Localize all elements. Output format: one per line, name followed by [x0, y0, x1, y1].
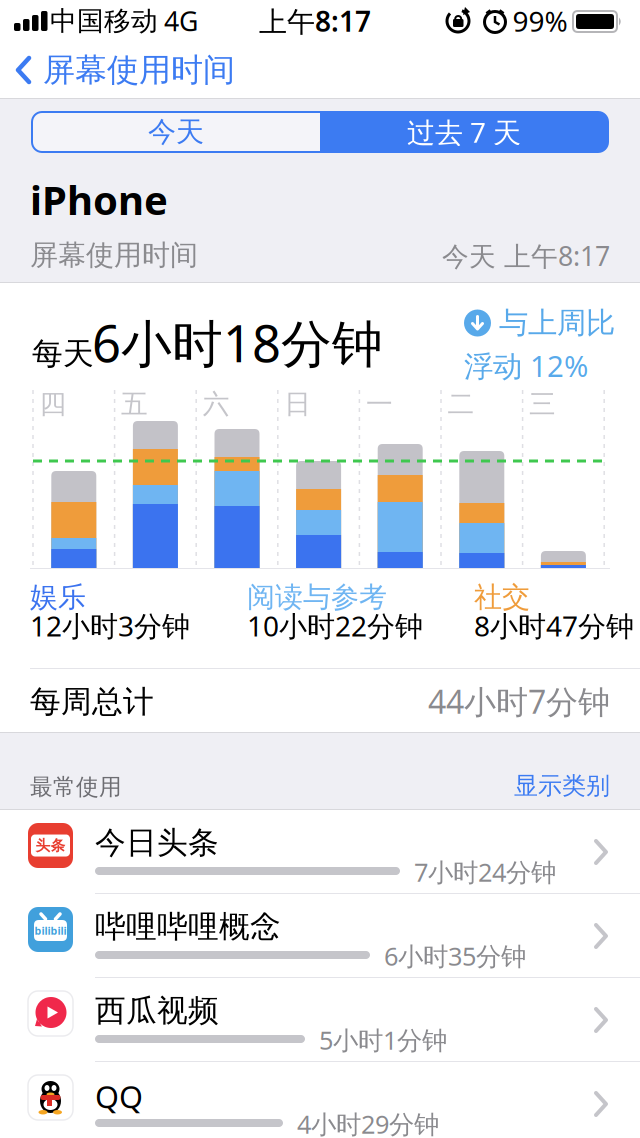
staticText: 今日头条 — [95, 824, 219, 862]
staticText: 过去 7 天 — [407, 113, 521, 151]
staticText: 5小时1分钟 — [319, 1023, 447, 1057]
button[interactable]: 过去 7 天 — [320, 112, 608, 152]
staticText: 六 — [203, 388, 230, 420]
staticText: 4小时29分钟 — [297, 1107, 439, 1138]
staticText: 10小时22分钟 — [247, 607, 423, 644]
staticText: 四 — [39, 388, 66, 420]
staticText: 12小时3分钟 — [30, 607, 190, 644]
staticText: 日 — [284, 388, 311, 420]
staticText: 6小时18分钟 — [92, 309, 383, 376]
staticText: 头条 — [35, 836, 65, 854]
staticText: QQ — [95, 1076, 143, 1117]
staticText: 屏幕使用时间 — [43, 50, 235, 90]
button[interactable]: 西瓜视频 — [0, 978, 640, 1062]
staticText: 7小时24分钟 — [414, 855, 556, 889]
staticText: iPhone — [30, 173, 168, 226]
staticText: 屏幕使用时间 — [30, 238, 198, 272]
staticText: 4G — [164, 3, 198, 39]
button[interactable]: QQ — [0, 1062, 640, 1138]
staticText: 社交 — [474, 580, 530, 614]
staticText: 6小时35分钟 — [384, 939, 526, 973]
staticText: 娱乐 — [30, 580, 86, 614]
button[interactable]: 屏幕使用时间 — [0, 42, 235, 98]
staticText: 三 — [529, 388, 556, 420]
staticText: 与上周比 — [499, 305, 615, 341]
staticText: 今天 — [148, 115, 204, 149]
button[interactable]: 头条 — [0, 810, 640, 894]
staticText: 中国移动 — [50, 5, 158, 37]
button[interactable]: bilibili — [0, 894, 640, 978]
staticText: 显示类别 — [514, 771, 610, 800]
staticText: 西瓜视频 — [95, 992, 219, 1030]
staticText: 上午8:17 — [259, 2, 371, 40]
staticText: 每天 — [32, 335, 94, 373]
staticText: 8小时47分钟 — [474, 607, 634, 644]
button[interactable]: 显示类别 — [514, 771, 640, 800]
staticText: 99% — [512, 2, 567, 40]
staticText: 浮动 12% — [464, 346, 588, 385]
staticText: 最常使用 — [30, 773, 122, 801]
staticText: 五 — [121, 388, 148, 420]
staticText: 今天 上午8:17 — [442, 238, 610, 273]
button[interactable]: 今天 — [32, 112, 320, 152]
staticText: 一 — [366, 388, 393, 420]
staticText: 阅读与参考 — [247, 580, 387, 614]
staticText: 二 — [447, 388, 474, 420]
staticText: 哔哩哔哩概念 — [95, 908, 281, 946]
staticText: 每周总计 — [30, 683, 154, 721]
staticText: bilibili — [34, 923, 66, 938]
staticText: 44小时7分钟 — [428, 680, 610, 722]
